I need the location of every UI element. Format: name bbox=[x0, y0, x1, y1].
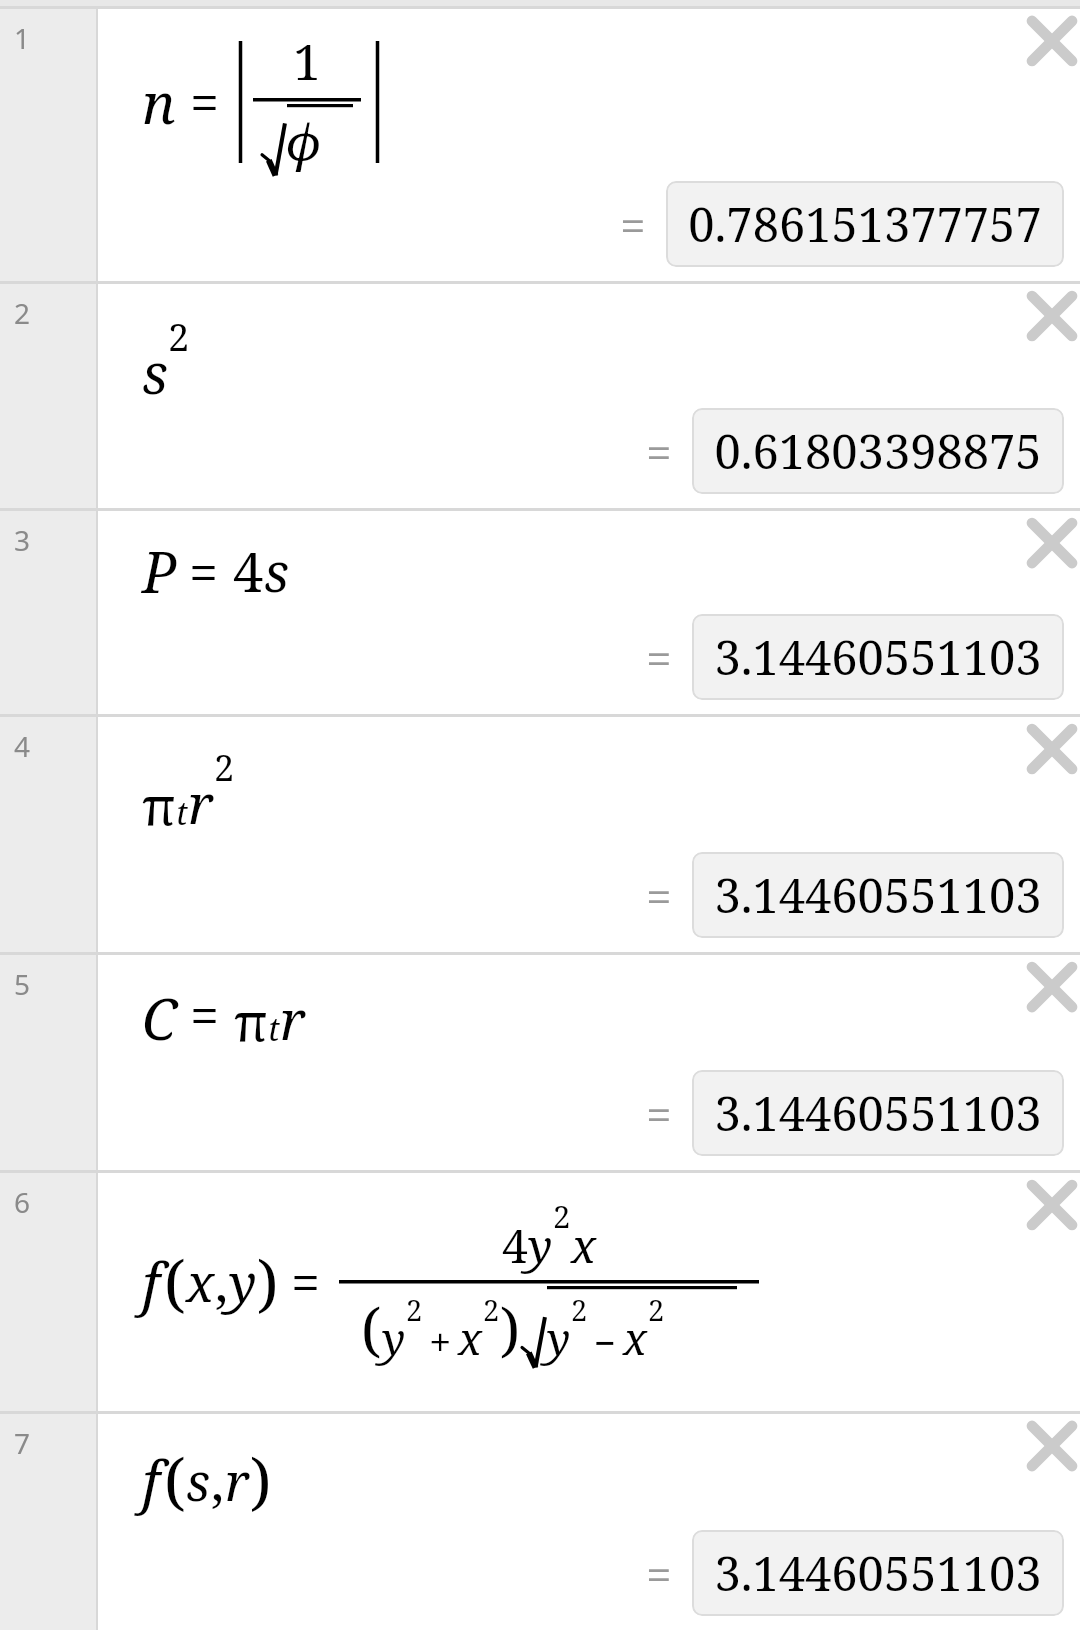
staticText: r bbox=[280, 982, 306, 1056]
staticText: C bbox=[142, 980, 178, 1056]
staticText: + bbox=[429, 1314, 452, 1368]
staticText: t bbox=[176, 791, 188, 835]
staticText: x bbox=[458, 1308, 483, 1368]
staticText: 1 bbox=[14, 19, 31, 57]
button[interactable]: 0.786151377757 bbox=[666, 181, 1064, 267]
staticText: y bbox=[382, 1308, 406, 1368]
staticText: r bbox=[188, 766, 214, 840]
staticText: π bbox=[234, 985, 268, 1056]
staticText: π bbox=[142, 769, 176, 840]
staticText: r bbox=[225, 1445, 250, 1516]
button[interactable]: Delete expression bbox=[1016, 951, 1080, 1023]
staticText: 2 bbox=[571, 1290, 588, 1329]
staticText: 0.786151377757 bbox=[688, 192, 1042, 256]
staticText: = bbox=[646, 420, 672, 483]
staticText: − bbox=[594, 1316, 617, 1368]
staticText: 2 bbox=[406, 1290, 423, 1329]
button[interactable]: Delete expression bbox=[1016, 713, 1080, 785]
button[interactable]: 1 bbox=[0, 9, 96, 281]
button[interactable]: Delete expression bbox=[1016, 5, 1080, 77]
button[interactable]: 2 bbox=[0, 284, 96, 508]
button[interactable]: Delete expression bbox=[1016, 280, 1080, 352]
staticText: y bbox=[528, 1214, 553, 1277]
staticText: ) bbox=[257, 1240, 279, 1324]
staticText: y bbox=[229, 1246, 257, 1317]
staticText: 6 bbox=[14, 1183, 31, 1221]
staticText: 3.14460551103 bbox=[714, 625, 1042, 689]
staticText: 3.14460551103 bbox=[714, 863, 1042, 927]
button[interactable]: π bbox=[98, 717, 1080, 952]
staticText: ( bbox=[164, 1438, 186, 1522]
staticText: x bbox=[623, 1308, 648, 1368]
staticText: 0.61803398875 bbox=[714, 419, 1042, 483]
staticText: 2 bbox=[648, 1290, 665, 1329]
staticText: 3.14460551103 bbox=[714, 1541, 1042, 1605]
staticText: 4 bbox=[502, 1214, 528, 1277]
button[interactable]: 7 bbox=[0, 1414, 96, 1630]
staticText: f bbox=[142, 1244, 160, 1320]
staticText: x bbox=[186, 1246, 215, 1317]
staticText: = bbox=[291, 1246, 321, 1317]
button[interactable]: 3.14460551103 bbox=[692, 614, 1064, 700]
staticText: 5 bbox=[14, 965, 31, 1003]
staticText: s bbox=[142, 334, 168, 410]
staticText: 2 bbox=[214, 743, 235, 792]
staticText: ϕ bbox=[287, 108, 322, 176]
staticText: 2 bbox=[14, 294, 31, 332]
button[interactable]: f bbox=[98, 1414, 1080, 1630]
staticText: f bbox=[142, 1442, 160, 1518]
staticText: = bbox=[646, 1082, 672, 1145]
button[interactable]: P bbox=[98, 511, 1080, 714]
staticText: = bbox=[190, 979, 220, 1050]
staticText: s bbox=[264, 534, 290, 608]
button[interactable]: f bbox=[98, 1173, 1080, 1411]
staticText: = bbox=[646, 626, 672, 689]
staticText: = bbox=[646, 864, 672, 927]
staticText: 2 bbox=[168, 310, 190, 362]
staticText: 2 bbox=[553, 1195, 571, 1237]
button[interactable]: 3.14460551103 bbox=[692, 852, 1064, 938]
staticText: = bbox=[189, 536, 219, 607]
button[interactable]: C bbox=[98, 955, 1080, 1170]
button[interactable]: n bbox=[98, 9, 1080, 281]
staticText: t bbox=[268, 1007, 280, 1051]
staticText: ) bbox=[250, 1438, 272, 1522]
staticText: 2 bbox=[483, 1290, 500, 1329]
staticText: s bbox=[186, 1445, 211, 1516]
staticText: 7 bbox=[14, 1424, 31, 1462]
staticText: ( bbox=[164, 1240, 186, 1324]
staticText: = bbox=[646, 1542, 672, 1605]
button[interactable]: Delete expression bbox=[1016, 1169, 1080, 1241]
staticText: ) bbox=[500, 1289, 521, 1368]
button[interactable]: 4 bbox=[0, 717, 96, 952]
staticText: P bbox=[142, 533, 177, 609]
staticText: y bbox=[547, 1308, 571, 1368]
staticText: 1 bbox=[293, 27, 321, 95]
staticText: 4 bbox=[14, 727, 31, 765]
button[interactable]: 3.14460551103 bbox=[692, 1530, 1064, 1616]
staticText: 4 bbox=[233, 534, 264, 608]
staticText: , bbox=[215, 1246, 229, 1317]
button[interactable]: Delete expression bbox=[1016, 1410, 1080, 1482]
button[interactable]: 3 bbox=[0, 511, 96, 714]
staticText: = bbox=[190, 66, 220, 137]
staticText: = bbox=[620, 193, 646, 256]
staticText: 3 bbox=[14, 521, 31, 559]
staticText: , bbox=[211, 1445, 225, 1516]
staticText: n bbox=[142, 64, 176, 140]
staticText: x bbox=[571, 1214, 597, 1277]
staticText: 3.14460551103 bbox=[714, 1081, 1042, 1145]
button[interactable]: s bbox=[98, 284, 1080, 508]
button[interactable]: 5 bbox=[0, 955, 96, 1170]
button[interactable]: 6 bbox=[0, 1173, 96, 1411]
staticText: ( bbox=[361, 1289, 382, 1368]
button[interactable]: 0.61803398875 bbox=[692, 408, 1064, 494]
button[interactable]: 3.14460551103 bbox=[692, 1070, 1064, 1156]
button[interactable]: Delete expression bbox=[1016, 507, 1080, 579]
